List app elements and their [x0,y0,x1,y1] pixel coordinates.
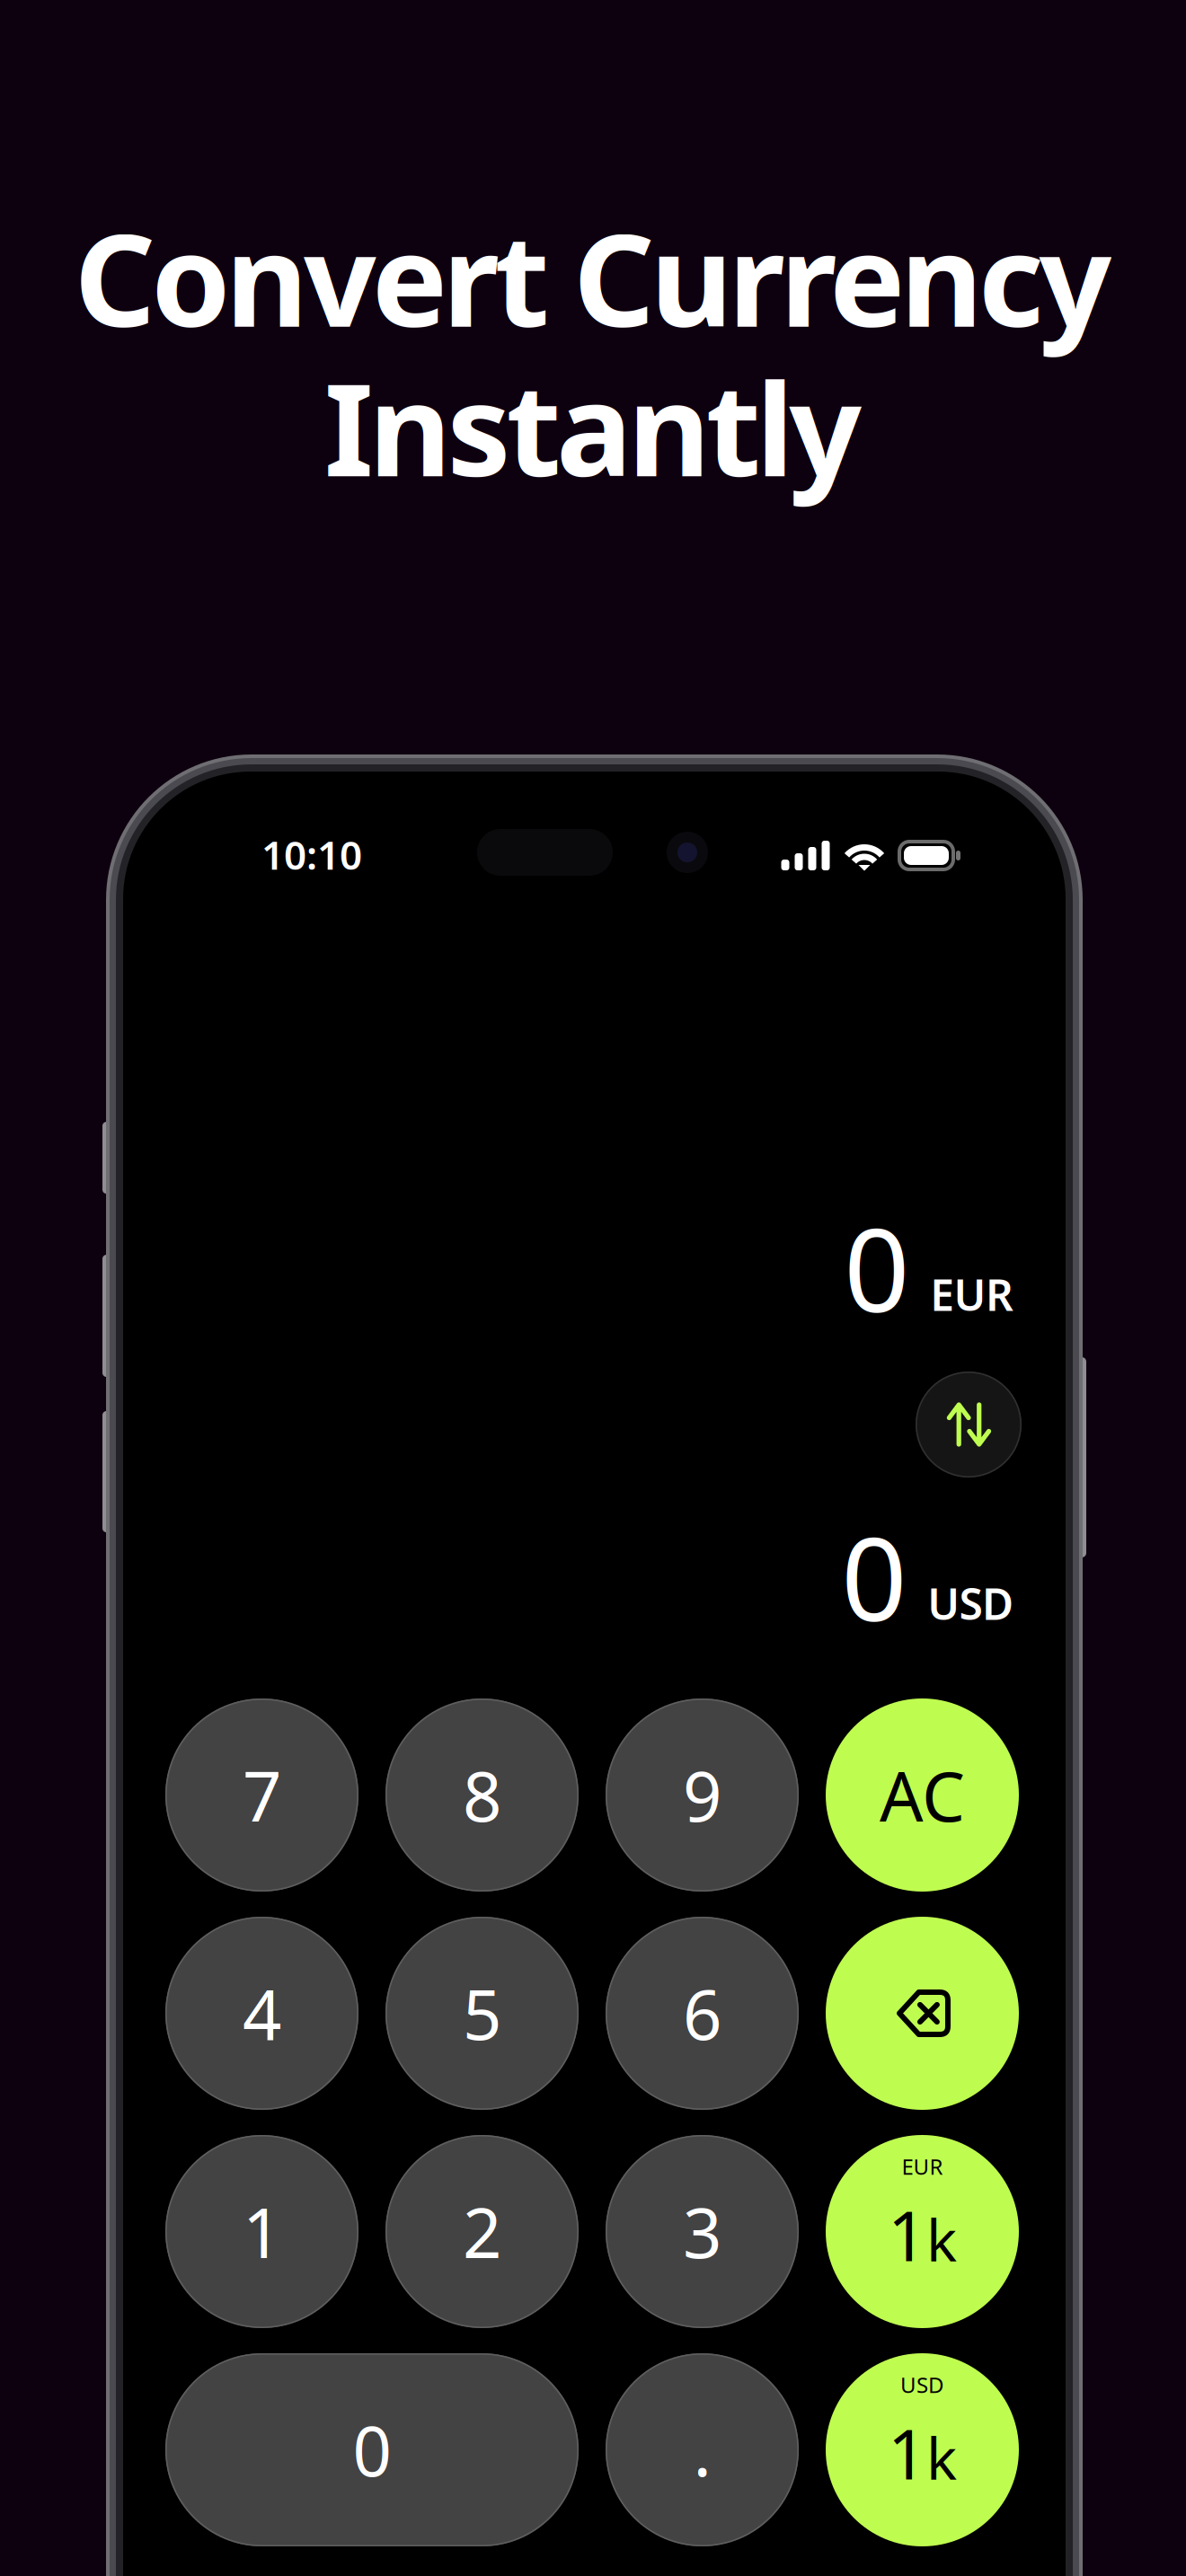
staticText: k [926,2419,957,2496]
staticText: . [693,2404,711,2495]
staticText: 0 [841,1500,907,1653]
button[interactable]: . [606,2353,799,2546]
button[interactable]: 7 [165,1698,358,1892]
staticText: Convert Currency [74,193,1112,362]
staticText: 0 [353,2404,391,2495]
button[interactable]: 0 [165,2353,579,2546]
button[interactable]: 5 [385,1917,579,2110]
button[interactable]: 6 [606,1917,799,2110]
staticText: 10:10 [261,828,362,881]
button[interactable]: 9 [606,1698,799,1892]
button[interactable]: 1 [165,2135,358,2328]
staticText: 4 [243,1968,281,2059]
staticText: 3 [683,2186,721,2277]
button[interactable]: 4 [165,1917,358,2110]
staticText: EUR [930,1266,1013,1323]
staticText: USD [927,1575,1013,1632]
staticText: 1 [888,2189,926,2280]
button[interactable]: Delete [826,1917,1019,2110]
button[interactable]: 3 [606,2135,799,2328]
button[interactable]: 8 [385,1698,579,1892]
staticText: 8 [463,1750,501,1840]
staticText: k [926,2201,957,2277]
staticText: AC [880,1750,965,1840]
staticText: USD [900,2370,944,2399]
button[interactable]: Swap currencies [916,1372,1022,1478]
staticText: 0 [844,1191,909,1344]
button[interactable]: 2 [385,2135,579,2328]
staticText: Instantly [324,343,862,511]
staticText: 6 [683,1968,721,2059]
button[interactable]: AC [826,1698,1019,1892]
staticText: 9 [683,1750,721,1840]
button[interactable]: EUR [826,2135,1019,2328]
staticText: 2 [463,2186,501,2277]
staticText: EUR [902,2152,943,2181]
staticText: 1 [243,2186,281,2277]
button[interactable]: USD [826,2353,1019,2546]
staticText: 1 [888,2408,926,2498]
staticText: 7 [243,1750,281,1840]
staticText: 5 [463,1968,501,2059]
